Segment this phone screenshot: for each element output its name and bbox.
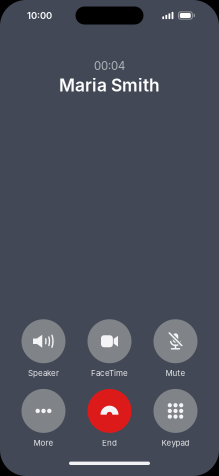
staticText: 10:00 bbox=[27, 10, 52, 21]
staticText: End bbox=[102, 438, 117, 448]
button[interactable]: Mute bbox=[142, 319, 208, 378]
staticText: 00:04 bbox=[94, 59, 125, 73]
button[interactable]: Speaker bbox=[10, 319, 76, 378]
button[interactable]: Keypad bbox=[142, 389, 208, 448]
button[interactable]: FaceTime bbox=[76, 319, 142, 378]
button[interactable]: End call bbox=[76, 389, 142, 448]
staticText: Keypad bbox=[161, 438, 189, 448]
staticText: More bbox=[33, 438, 53, 448]
staticText: FaceTime bbox=[91, 368, 128, 378]
staticText: Maria Smith bbox=[59, 75, 160, 96]
button[interactable]: More bbox=[10, 389, 76, 448]
staticText: Mute bbox=[165, 368, 185, 378]
staticText: Speaker bbox=[28, 368, 59, 378]
